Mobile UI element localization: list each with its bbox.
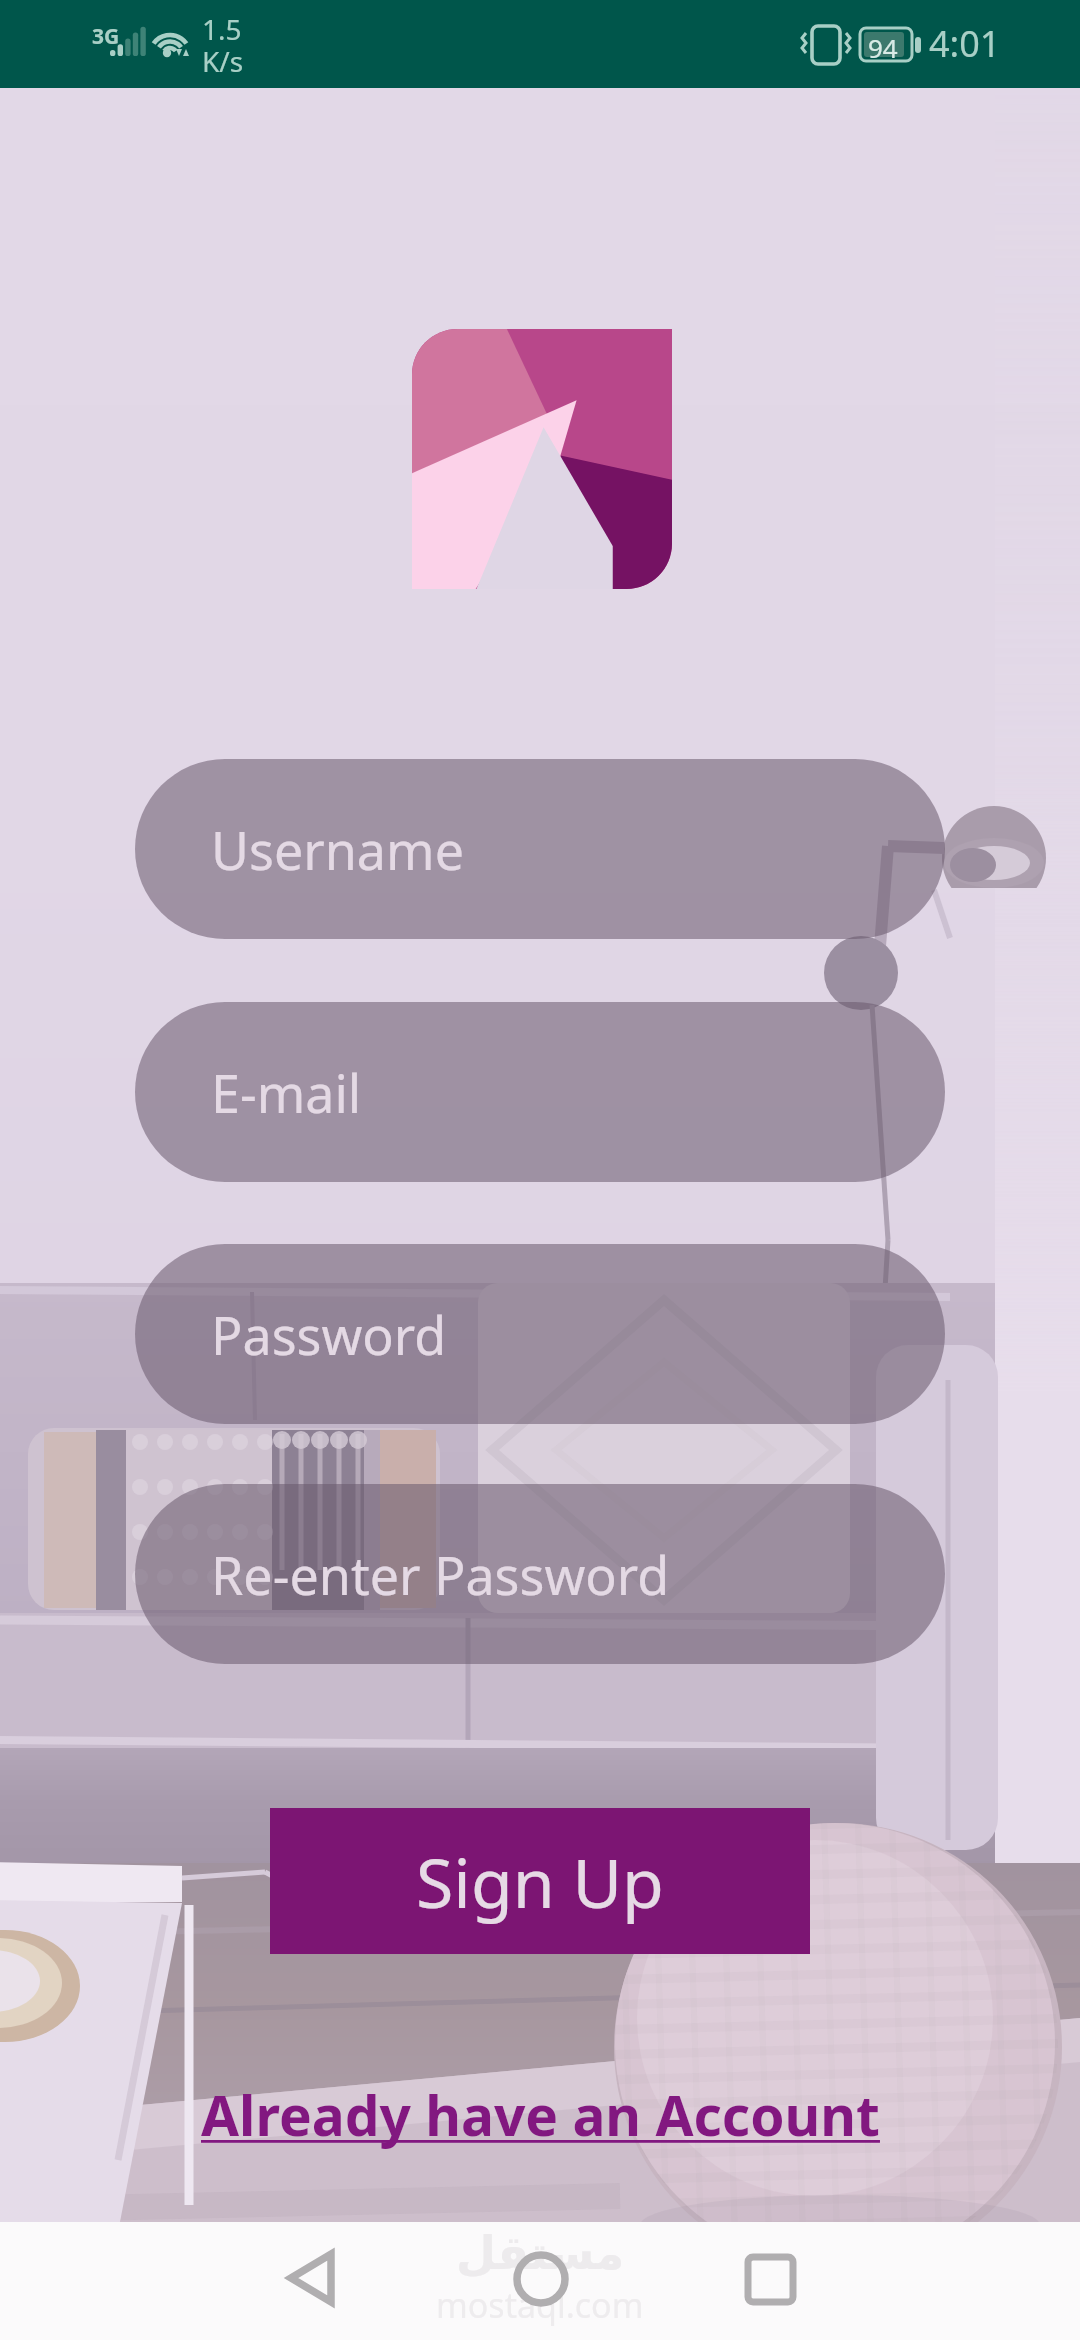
button[interactable]: Back xyxy=(256,2223,366,2333)
button[interactable]: Username xyxy=(135,759,945,939)
staticText: Re-enter Password xyxy=(211,1539,670,1610)
staticText: 1.5 K/s xyxy=(202,10,244,80)
button[interactable]: Password xyxy=(135,1244,945,1424)
button[interactable]: Sign Up xyxy=(270,1808,810,1954)
staticText: 94 xyxy=(868,30,898,65)
staticText: Password xyxy=(211,1299,447,1370)
button[interactable]: Home xyxy=(486,2224,596,2334)
staticText: Sign Up xyxy=(416,1835,664,1928)
staticText: Already have an Account xyxy=(201,2077,880,2152)
staticText: mostaql.com xyxy=(436,2282,644,2328)
button[interactable]: Already have an Account xyxy=(0,2064,1080,2164)
staticText: E-mail xyxy=(211,1057,362,1128)
button[interactable]: Recent apps xyxy=(715,2224,825,2334)
staticText: مستقل xyxy=(456,2226,625,2280)
staticText: 4:01 xyxy=(929,19,1001,68)
staticText: Username xyxy=(211,814,464,885)
staticText: 3G xyxy=(92,22,120,51)
button[interactable]: E-mail xyxy=(135,1002,945,1182)
button[interactable]: Re-enter Password xyxy=(135,1484,945,1664)
